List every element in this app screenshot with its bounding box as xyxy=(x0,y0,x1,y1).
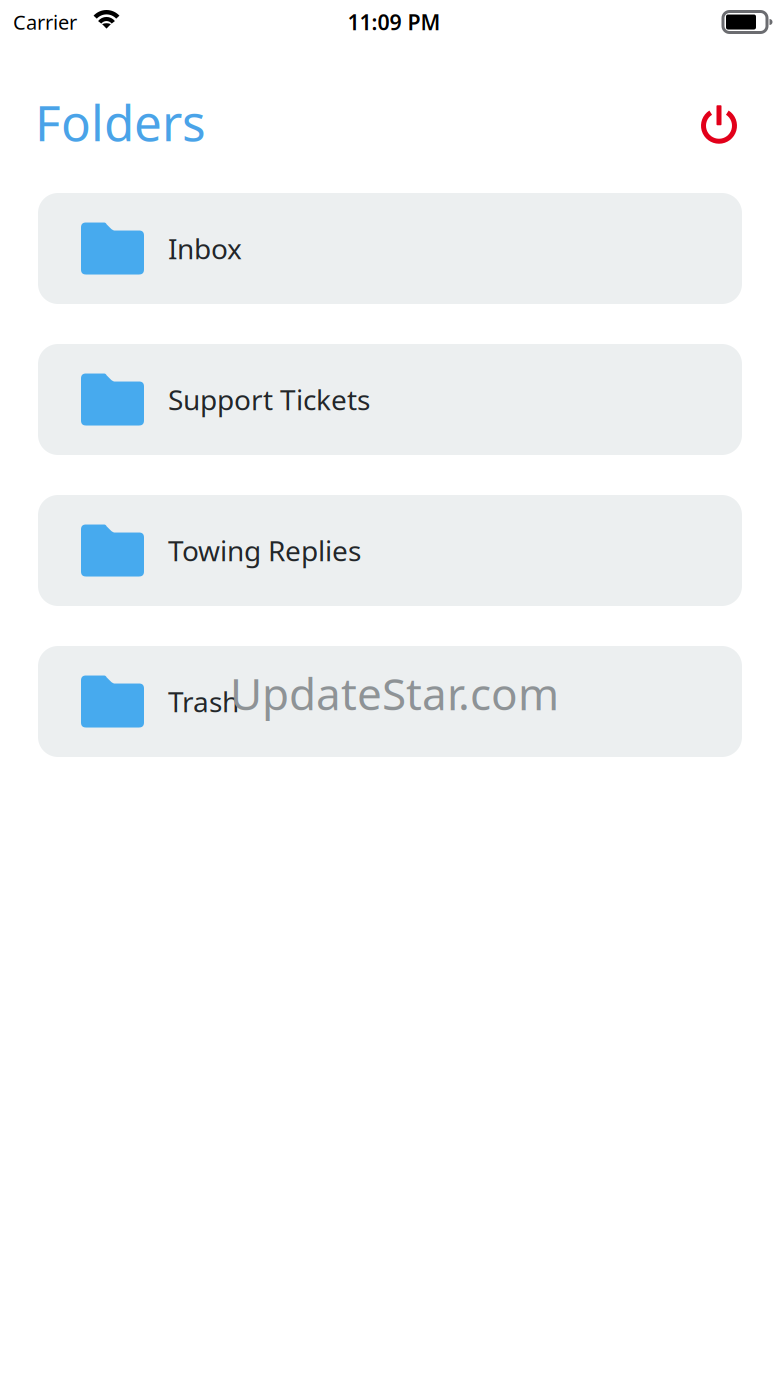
button[interactable]: Towing Replies xyxy=(38,495,742,606)
button[interactable]: Trash xyxy=(38,646,742,757)
staticText: 11:09 PM xyxy=(347,8,440,36)
staticText: Folders xyxy=(35,89,206,155)
button[interactable]: Inbox xyxy=(38,193,742,304)
staticText: Trash xyxy=(168,683,239,720)
staticText: Support Tickets xyxy=(168,381,370,418)
staticText: UpdateStar.com xyxy=(230,664,559,722)
button[interactable]: Sign out xyxy=(701,89,780,141)
staticText: Towing Replies xyxy=(168,532,361,569)
staticText: Carrier xyxy=(13,9,77,35)
staticText: Inbox xyxy=(168,230,242,267)
button[interactable]: Support Tickets xyxy=(38,344,742,455)
